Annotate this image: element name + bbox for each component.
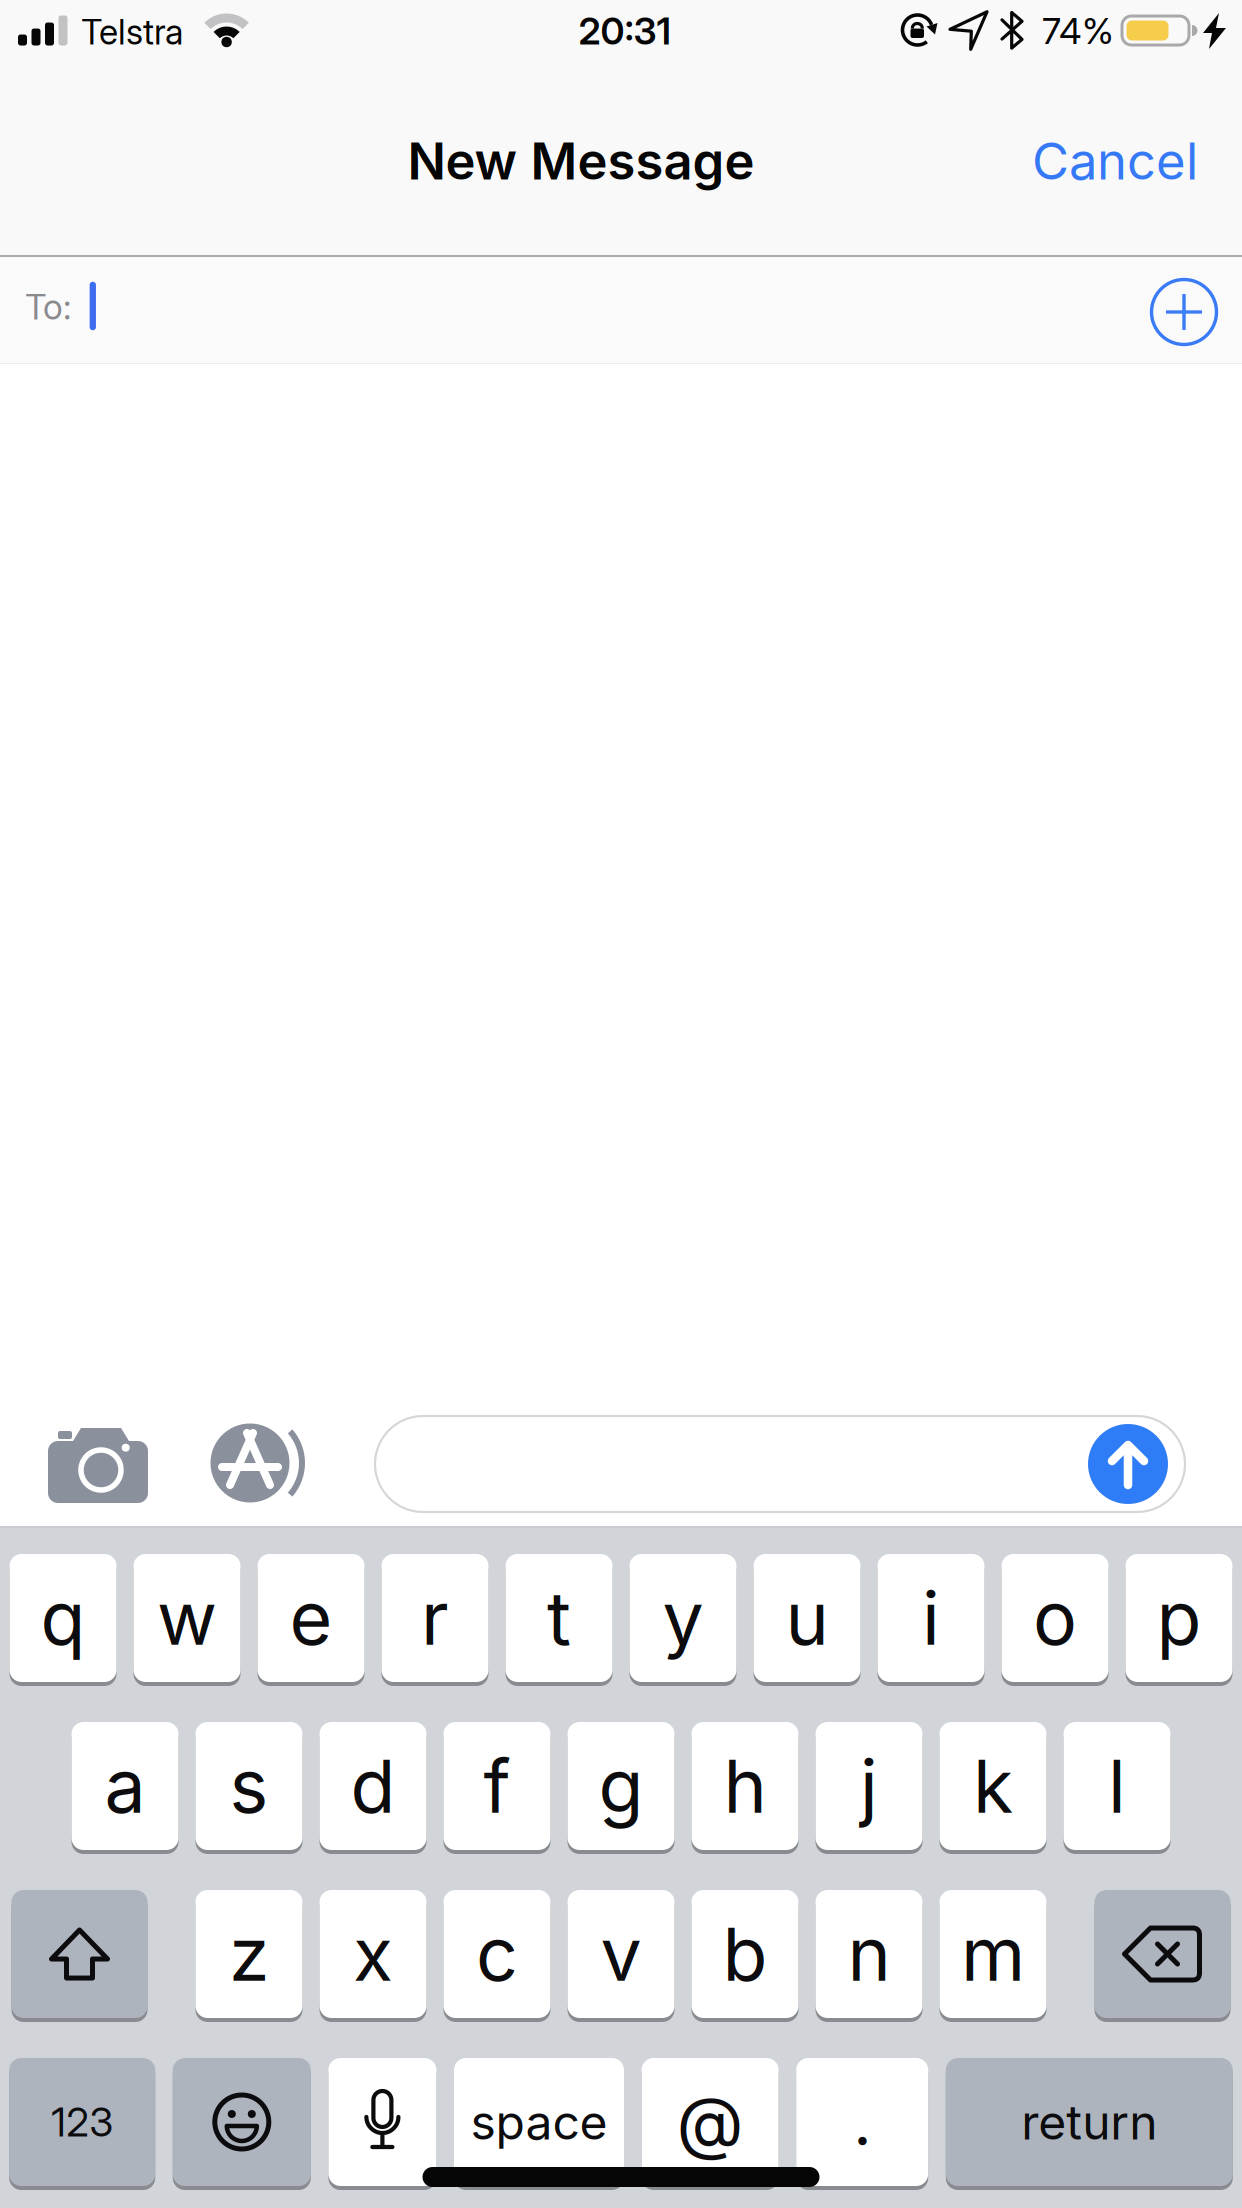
staticText: Cancel <box>1032 130 1198 192</box>
staticText: o <box>1033 1574 1077 1662</box>
staticText: 74% <box>1042 9 1114 53</box>
staticText: t <box>547 1574 571 1662</box>
button[interactable]: n <box>815 1890 922 2018</box>
staticText: g <box>598 1742 643 1830</box>
staticText: return <box>1021 2093 1157 2151</box>
button[interactable]: Shift <box>11 1890 147 2018</box>
staticText: y <box>662 1574 703 1662</box>
button[interactable]: t <box>505 1554 612 1682</box>
staticText: p <box>1156 1574 1201 1662</box>
button[interactable]: e <box>257 1554 364 1682</box>
button[interactable]: k <box>939 1722 1046 1850</box>
staticText: To: <box>25 286 71 328</box>
staticText: @ <box>677 2080 744 2164</box>
staticText: 123 <box>51 2098 113 2146</box>
button[interactable]: p <box>1125 1554 1232 1682</box>
staticText: k <box>973 1742 1013 1830</box>
button[interactable]: f <box>443 1722 550 1850</box>
button[interactable]: v <box>567 1890 674 2018</box>
button[interactable]: Emoji <box>173 2058 311 2186</box>
button[interactable]: b <box>691 1890 798 2018</box>
staticText: e <box>289 1574 332 1662</box>
staticText: u <box>785 1574 828 1662</box>
staticText: q <box>40 1574 85 1662</box>
button[interactable]: u <box>753 1554 860 1682</box>
button[interactable]: w <box>133 1554 240 1682</box>
staticText: r <box>421 1574 449 1662</box>
button[interactable]: r <box>381 1554 488 1682</box>
button[interactable]: Add Contact <box>1144 272 1224 352</box>
button[interactable]: d <box>319 1722 426 1850</box>
staticText: a <box>104 1742 145 1830</box>
button[interactable]: q <box>9 1554 116 1682</box>
staticText: Telstra <box>81 11 183 53</box>
button[interactable]: Dictation <box>328 2058 436 2186</box>
button[interactable]: h <box>691 1722 798 1850</box>
staticText: f <box>483 1742 510 1830</box>
staticText: 20:31 <box>578 8 671 54</box>
staticText: m <box>961 1910 1025 1998</box>
staticText: x <box>353 1910 393 1998</box>
button[interactable]: z <box>195 1890 302 2018</box>
staticText: i <box>922 1574 940 1662</box>
staticText: h <box>723 1742 766 1830</box>
staticText: z <box>229 1910 269 1998</box>
button[interactable]: o <box>1001 1554 1108 1682</box>
button[interactable]: Apps <box>192 1414 332 1514</box>
staticText: d <box>350 1742 395 1830</box>
button[interactable]: space <box>454 2058 624 2186</box>
button[interactable]: l <box>1063 1722 1170 1850</box>
staticText: . <box>853 2083 871 2161</box>
staticText: v <box>600 1910 641 1998</box>
button[interactable]: @ <box>642 2058 779 2186</box>
button[interactable]: . <box>796 2058 928 2186</box>
button[interactable]: m <box>939 1890 1046 2018</box>
button[interactable]: j <box>815 1722 922 1850</box>
button[interactable]: 123 <box>9 2058 155 2186</box>
button[interactable]: Camera <box>32 1416 164 1516</box>
staticText: s <box>229 1742 268 1830</box>
staticText: l <box>1108 1742 1126 1830</box>
button[interactable]: return <box>946 2058 1233 2186</box>
staticText: j <box>860 1742 878 1830</box>
staticText: b <box>722 1910 767 1998</box>
button[interactable]: g <box>567 1722 674 1850</box>
staticText: space <box>470 2093 607 2151</box>
button[interactable]: Send <box>1085 1421 1171 1507</box>
button[interactable]: c <box>443 1890 550 2018</box>
staticText: c <box>476 1910 518 1998</box>
button[interactable]: s <box>195 1722 302 1850</box>
staticText: n <box>847 1910 890 1998</box>
button[interactable]: a <box>71 1722 178 1850</box>
button[interactable]: y <box>629 1554 736 1682</box>
staticText: New Message <box>407 130 754 192</box>
button[interactable]: Cancel <box>1032 130 1198 192</box>
staticText: w <box>157 1574 217 1662</box>
button[interactable]: Delete <box>1094 1890 1230 2018</box>
button[interactable]: i <box>877 1554 984 1682</box>
button[interactable]: x <box>319 1890 426 2018</box>
